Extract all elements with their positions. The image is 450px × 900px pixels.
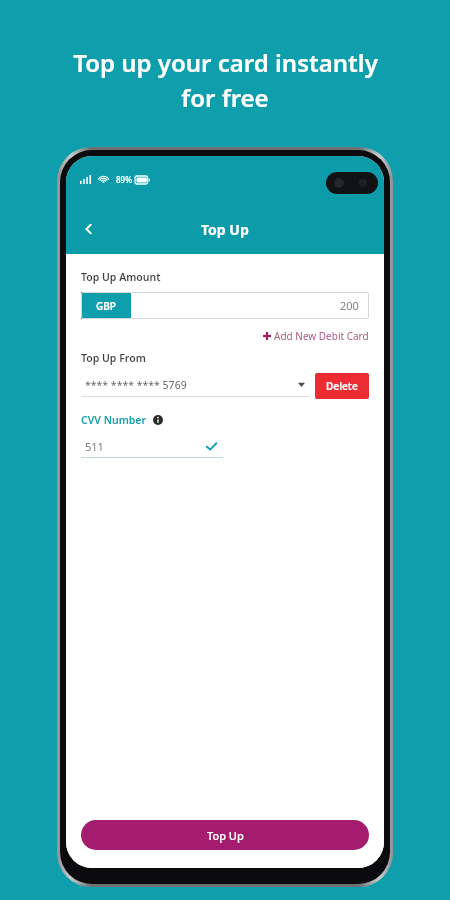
- staticText: GBP: [96, 299, 116, 313]
- button[interactable]: Top Up: [81, 820, 369, 850]
- staticText: Top Up From: [81, 351, 146, 365]
- staticText: Add New Debit Card: [274, 329, 369, 343]
- staticText: 511: [85, 439, 104, 454]
- button[interactable]: Add New Debit Card: [263, 327, 369, 345]
- staticText: CVV Number: [81, 413, 147, 427]
- staticText: **** **** **** 5769: [85, 378, 187, 392]
- staticText: Delete: [326, 379, 358, 393]
- button[interactable]: CVV info: [151, 413, 165, 427]
- staticText: Top Up Amount: [81, 270, 161, 284]
- staticText: Top up your card instantly: [73, 46, 378, 79]
- staticText: Top Up: [201, 220, 249, 239]
- staticText: Top Up: [207, 828, 244, 843]
- button[interactable]: **** **** **** 5769: [81, 373, 309, 397]
- staticText: 89%: [116, 174, 132, 185]
- staticText: for free: [181, 81, 269, 114]
- button[interactable]: Delete: [315, 373, 369, 399]
- button[interactable]: GBP: [81, 292, 369, 319]
- button[interactable]: 511: [81, 435, 223, 458]
- button[interactable]: Back: [70, 210, 108, 248]
- staticText: 200: [340, 298, 359, 313]
